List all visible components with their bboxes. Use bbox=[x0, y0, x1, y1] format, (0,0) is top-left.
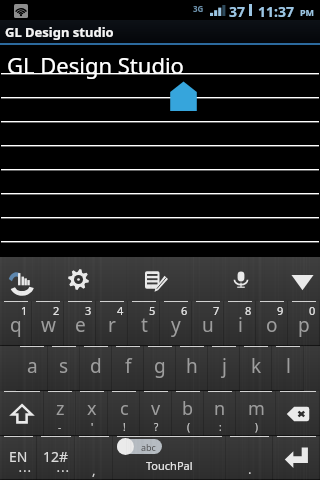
button[interactable]: s bbox=[48, 346, 80, 391]
staticText: g bbox=[154, 353, 166, 379]
staticText: : bbox=[219, 420, 222, 434]
staticText: n bbox=[214, 396, 226, 421]
button[interactable]: 6 bbox=[160, 301, 192, 346]
staticText: t bbox=[141, 312, 148, 338]
staticText: r bbox=[108, 312, 116, 338]
staticText: ' bbox=[91, 420, 94, 434]
staticText: EN bbox=[9, 447, 28, 466]
staticText: j bbox=[222, 353, 227, 379]
staticText: 3G bbox=[193, 3, 204, 14]
staticText: 6 bbox=[181, 303, 188, 318]
staticText: . bbox=[248, 460, 252, 478]
button[interactable]: l bbox=[272, 346, 304, 391]
staticText: a bbox=[27, 353, 38, 379]
button[interactable]: 1 bbox=[0, 301, 32, 346]
staticText: PM bbox=[300, 6, 315, 18]
button[interactable]: Enter bbox=[273, 436, 320, 480]
staticText: k bbox=[251, 353, 262, 379]
staticText: z bbox=[56, 396, 65, 421]
staticText: p bbox=[298, 312, 310, 338]
staticText: 1 bbox=[21, 303, 28, 318]
button[interactable]: Settings bbox=[56, 257, 100, 301]
button[interactable]: a bbox=[16, 346, 48, 391]
button[interactable]: f bbox=[112, 346, 144, 391]
button[interactable]: x bbox=[76, 391, 108, 436]
staticText: 2 bbox=[53, 303, 60, 318]
button[interactable]: n bbox=[204, 391, 236, 436]
button[interactable]: v bbox=[140, 391, 172, 436]
button[interactable]: Handwriting bbox=[0, 257, 43, 301]
button[interactable]: 8 bbox=[224, 301, 256, 346]
button[interactable]: Shift bbox=[0, 391, 44, 436]
button[interactable]: Comma bbox=[75, 436, 113, 480]
staticText: 37 bbox=[229, 2, 246, 21]
staticText: l bbox=[286, 353, 291, 379]
button[interactable]: b bbox=[172, 391, 204, 436]
button[interactable]: Notes bbox=[133, 257, 177, 301]
button[interactable]: 7 bbox=[192, 301, 224, 346]
staticText: 9 bbox=[277, 303, 284, 318]
staticText: ( bbox=[187, 420, 190, 434]
staticText: 8 bbox=[245, 303, 252, 318]
staticText: f bbox=[125, 353, 132, 379]
staticText: 7 bbox=[213, 303, 220, 318]
staticText: ! bbox=[123, 420, 126, 434]
button[interactable]: 4 bbox=[96, 301, 128, 346]
staticText: GL Design studio bbox=[5, 23, 114, 41]
button[interactable]: 3 bbox=[64, 301, 96, 346]
staticText: v bbox=[151, 396, 161, 421]
staticText: b bbox=[182, 396, 194, 421]
staticText: x bbox=[87, 396, 97, 421]
staticText: y bbox=[171, 312, 181, 338]
button[interactable]: z bbox=[44, 391, 76, 436]
button[interactable]: GL Design studio bbox=[0, 20, 320, 43]
button[interactable]: 2 bbox=[32, 301, 64, 346]
staticText: • • • bbox=[57, 467, 69, 477]
staticText: i bbox=[238, 312, 243, 338]
button[interactable]: c bbox=[108, 391, 140, 436]
staticText: - bbox=[58, 420, 62, 434]
staticText: • • • bbox=[19, 467, 31, 477]
button[interactable]: 12# bbox=[37, 436, 75, 480]
button[interactable]: Period bbox=[226, 436, 273, 480]
button[interactable]: Voice input bbox=[219, 257, 263, 301]
staticText: u bbox=[202, 312, 214, 338]
button[interactable]: h bbox=[176, 346, 208, 391]
button[interactable]: EN bbox=[0, 436, 37, 480]
button[interactable]: m bbox=[236, 391, 276, 436]
staticText: ) bbox=[255, 420, 258, 434]
staticText: , bbox=[92, 461, 96, 479]
staticText: abc bbox=[141, 441, 156, 453]
button[interactable]: GL Design Studio bbox=[0, 45, 320, 257]
button[interactable]: d bbox=[80, 346, 112, 391]
button[interactable]: j bbox=[208, 346, 240, 391]
button[interactable]: 5 bbox=[128, 301, 160, 346]
staticText: d bbox=[90, 353, 102, 379]
staticText: q bbox=[10, 312, 22, 338]
button[interactable]: Space bbox=[113, 436, 226, 480]
staticText: m bbox=[248, 396, 265, 421]
staticText: e bbox=[75, 312, 86, 338]
staticText: w bbox=[41, 312, 56, 338]
staticText: 11:37 bbox=[258, 2, 294, 21]
staticText: GL Design Studio bbox=[7, 50, 184, 80]
staticText: 12# bbox=[43, 447, 69, 466]
button[interactable]: Hide keyboard bbox=[280, 257, 320, 301]
staticText: 5 bbox=[149, 303, 156, 318]
staticText: ? bbox=[154, 420, 159, 434]
staticText: 4 bbox=[117, 303, 124, 318]
staticText: 3 bbox=[85, 303, 92, 318]
button[interactable]: 9 bbox=[256, 301, 288, 346]
button[interactable]: 0 bbox=[288, 301, 320, 346]
button[interactable]: g bbox=[144, 346, 176, 391]
staticText: o bbox=[266, 312, 278, 338]
staticText: c bbox=[120, 396, 129, 421]
staticText: h bbox=[186, 353, 198, 379]
button[interactable]: Backspace bbox=[276, 391, 320, 436]
button[interactable]: k bbox=[240, 346, 272, 391]
staticText: 0 bbox=[309, 303, 316, 318]
staticText: s bbox=[59, 353, 69, 379]
staticText: TouchPal bbox=[146, 458, 193, 473]
